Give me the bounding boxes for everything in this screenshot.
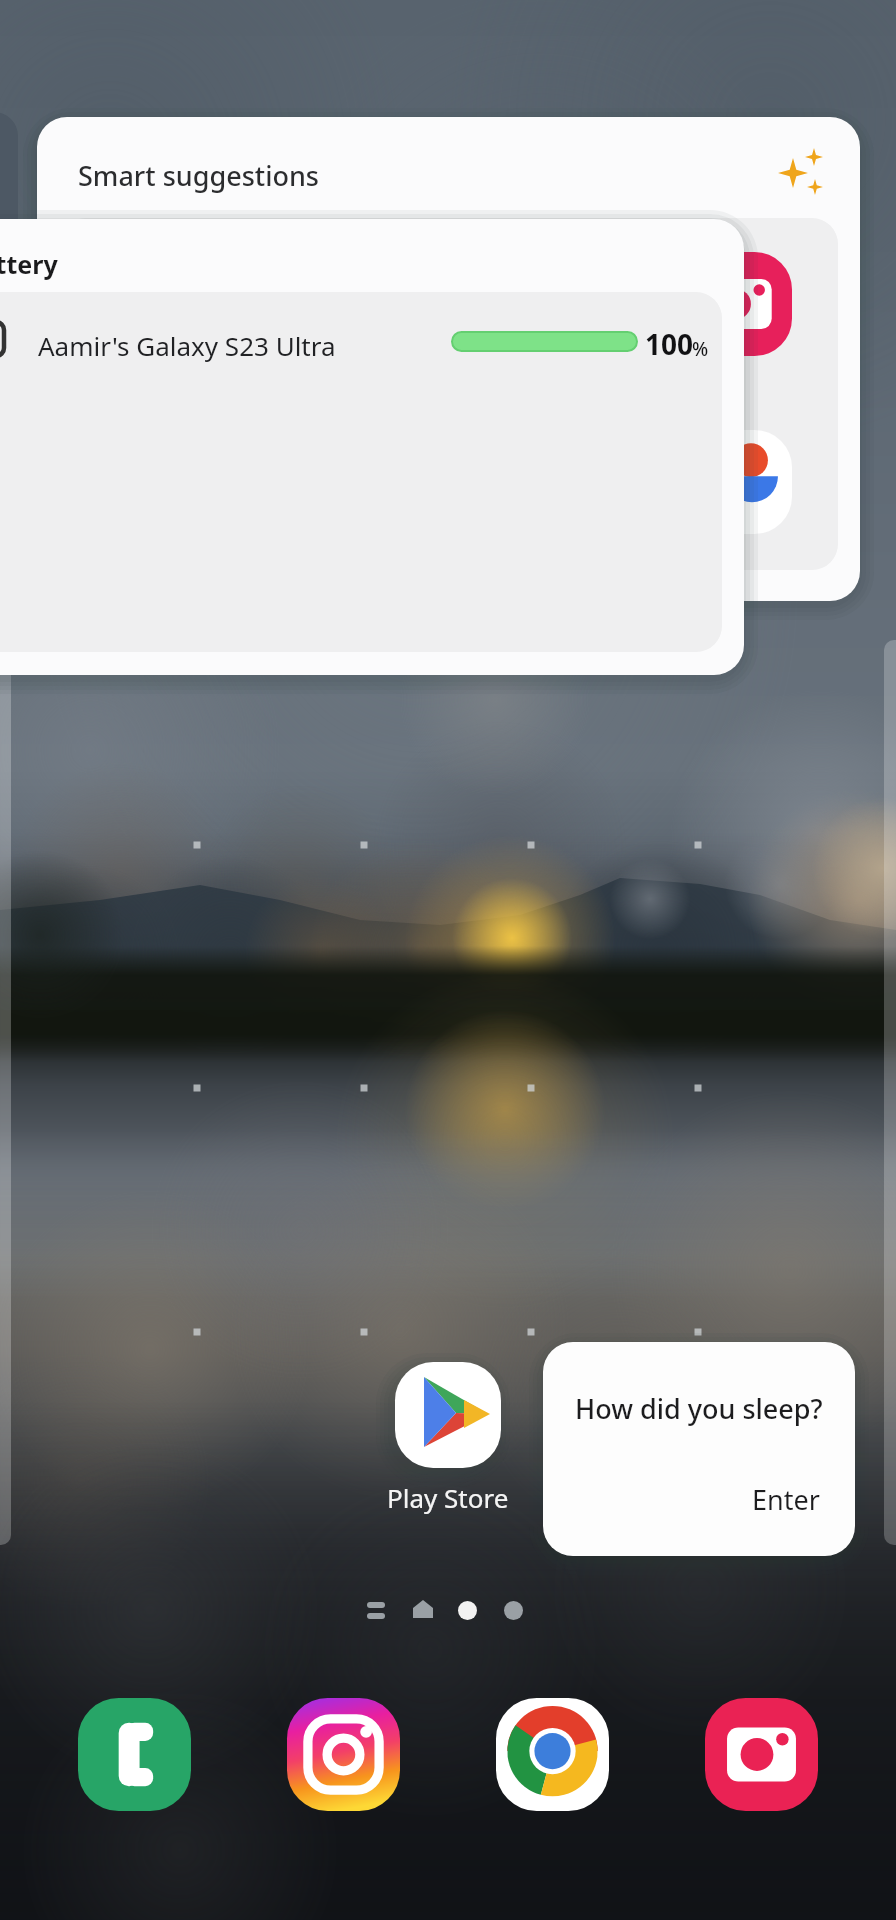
button[interactable] <box>287 1698 400 1811</box>
button[interactable] <box>60 218 838 570</box>
button[interactable] <box>366 1600 386 1620</box>
button[interactable] <box>504 1601 523 1620</box>
button[interactable] <box>705 1698 818 1811</box>
staticText: Battery <box>0 247 58 281</box>
button[interactable]: How did you sleep? <box>543 1342 855 1556</box>
staticText: % <box>692 336 709 362</box>
button[interactable] <box>412 1599 434 1621</box>
staticText: Aamir's Galaxy S23 Ultra <box>38 328 336 363</box>
staticText: Smart suggestions <box>78 157 319 194</box>
button[interactable] <box>458 1601 477 1620</box>
button[interactable] <box>496 1698 609 1811</box>
staticText: Enter <box>752 1481 820 1518</box>
button[interactable]: Play Store <box>368 1362 528 1515</box>
button[interactable] <box>78 1698 191 1811</box>
staticText: 100 <box>645 325 694 363</box>
staticText: How did you sleep? <box>575 1390 823 1427</box>
staticText: Play Store <box>387 1480 509 1515</box>
button[interactable]: Aamir's Galaxy S23 Ultra <box>0 292 722 652</box>
